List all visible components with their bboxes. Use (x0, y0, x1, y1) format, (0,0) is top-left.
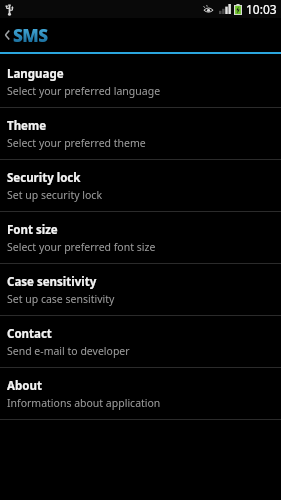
button[interactable]: Language (0, 56, 281, 107)
staticText: Contact (7, 326, 52, 342)
staticText: Select your preferred theme (7, 136, 146, 150)
staticText: Theme (7, 118, 47, 134)
staticText: Language (7, 66, 64, 82)
button[interactable]: About (0, 368, 281, 419)
staticText: Security lock (7, 170, 81, 186)
staticText: About (7, 378, 42, 394)
button[interactable]: Case sensitivity (0, 264, 281, 315)
button[interactable]: Contact (0, 316, 281, 367)
staticText: SMS (13, 24, 48, 47)
staticText: Set up security lock (7, 188, 102, 202)
staticText: Informations about application (7, 396, 161, 410)
staticText: Select your preferred font size (7, 240, 156, 254)
staticText: Send e-mail to developer (7, 344, 130, 358)
button[interactable]: Security lock (0, 160, 281, 211)
staticText: Select your preferred language (7, 84, 161, 98)
staticText: 10:03 (246, 1, 277, 17)
button[interactable]: Up, SMS (0, 18, 281, 52)
staticText: Font size (7, 222, 58, 238)
button[interactable]: Font size (0, 212, 281, 263)
button[interactable]: Theme (0, 108, 281, 159)
staticText: Set up case sensitivity (7, 292, 115, 306)
staticText: Case sensitivity (7, 274, 97, 290)
